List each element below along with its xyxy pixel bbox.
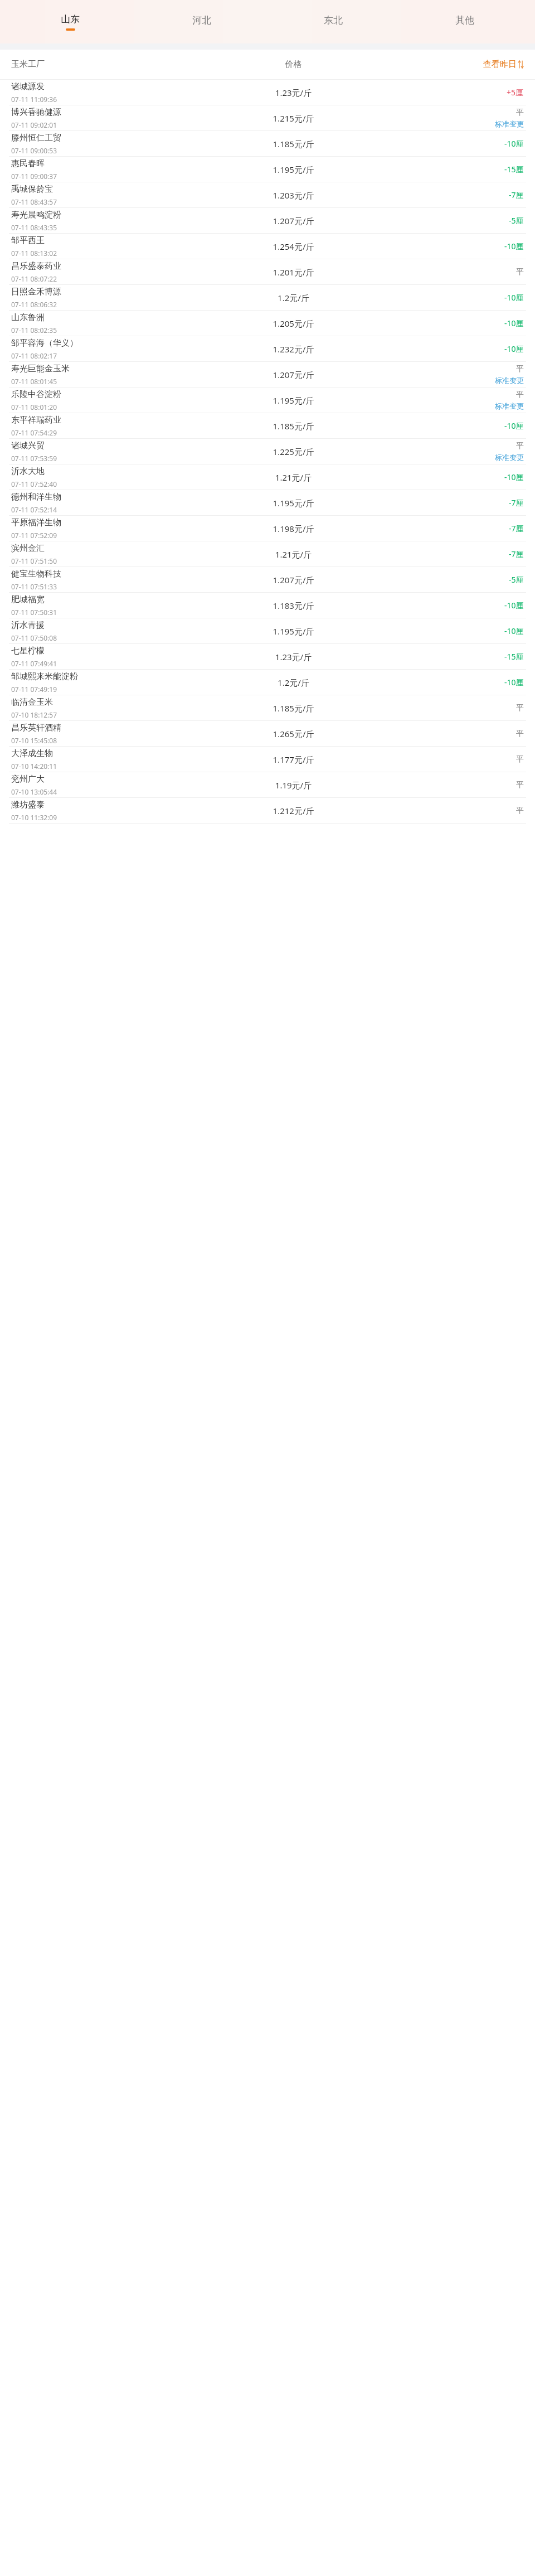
staticText: 临清金玉米	[11, 697, 53, 708]
staticText: 惠民春晖	[11, 158, 45, 169]
staticText: 07-11 07:51:50	[11, 556, 57, 565]
staticText: -10厘	[504, 677, 524, 687]
staticText: 07-11 09:02:01	[11, 120, 57, 129]
staticText: 07-10 15:45:08	[11, 736, 57, 745]
staticText: 1.2元/斤	[212, 292, 375, 303]
staticText: 1.177元/斤	[212, 754, 375, 765]
button[interactable]: 查看昨日	[375, 50, 524, 79]
staticText: -10厘	[504, 343, 524, 354]
button[interactable]: 滨州金汇	[0, 541, 535, 566]
button[interactable]: 潍坊盛泰	[0, 798, 535, 823]
staticText: 1.232元/斤	[212, 343, 375, 355]
button[interactable]: 寿光晨鸣淀粉	[0, 208, 535, 233]
staticText: 07-11 08:01:20	[11, 403, 57, 411]
button[interactable]: 兖州广大	[0, 772, 535, 797]
button[interactable]: 昌乐英轩酒精	[0, 721, 535, 746]
staticText: -15厘	[504, 164, 524, 175]
staticText: 寿光晨鸣淀粉	[11, 210, 61, 220]
button[interactable]: 乐陵中谷淀粉	[0, 388, 535, 413]
staticText: 七星柠檬	[11, 646, 45, 656]
button[interactable]: 滕州恒仁工贸	[0, 131, 535, 156]
staticText: 1.2元/斤	[212, 677, 375, 688]
staticText: 1.207元/斤	[212, 574, 375, 585]
staticText: 兖州广大	[11, 774, 45, 785]
button[interactable]: 平原福洋生物	[0, 516, 535, 541]
staticText: 1.198元/斤	[212, 523, 375, 534]
staticText: 1.201元/斤	[212, 267, 375, 278]
staticText: 07-10 18:12:57	[11, 710, 57, 719]
staticText: 邹平西王	[11, 235, 45, 246]
staticText: 1.225元/斤	[212, 446, 375, 457]
button[interactable]: 昌乐盛泰药业	[0, 259, 535, 284]
button[interactable]: 山东鲁洲	[0, 311, 535, 336]
staticText: -10厘	[504, 472, 524, 482]
button[interactable]: 惠民春晖	[0, 157, 535, 182]
staticText: 07-10 14:20:11	[11, 762, 57, 771]
button[interactable]: 邹平容海（华义）	[0, 336, 535, 361]
staticText: 1.265元/斤	[212, 728, 375, 739]
button[interactable]: 沂水大地	[0, 464, 535, 490]
staticText: 平	[516, 703, 524, 713]
button[interactable]: 沂水青援	[0, 618, 535, 643]
staticText: 山东鲁洲	[11, 312, 45, 323]
staticText: 玉米工厂	[11, 59, 212, 70]
button[interactable]: 诸城源发	[0, 80, 535, 105]
button[interactable]: 东平祥瑞药业	[0, 413, 535, 438]
staticText: 07-11 09:00:53	[11, 146, 57, 155]
button[interactable]: 禹城保龄宝	[0, 182, 535, 207]
button[interactable]: 东北	[267, 0, 399, 43]
staticText: 价格	[212, 59, 375, 70]
staticText: 滕州恒仁工贸	[11, 133, 61, 143]
staticText: 昌乐盛泰药业	[11, 261, 61, 272]
button[interactable]: 山东	[4, 0, 136, 43]
button[interactable]: 大泽成生物	[0, 747, 535, 772]
button[interactable]: 日照金禾博源	[0, 285, 535, 310]
staticText: 07-11 07:50:31	[11, 608, 57, 617]
staticText: 07-10 13:05:44	[11, 787, 57, 796]
staticText: 平	[516, 754, 524, 764]
staticText: 东平祥瑞药业	[11, 415, 61, 425]
button[interactable]: 河北	[136, 0, 267, 43]
staticText: 07-11 08:02:17	[11, 351, 57, 360]
staticText: 健宝生物科技	[11, 569, 61, 579]
staticText: 标准变更	[495, 376, 524, 385]
staticText: 平	[516, 441, 524, 451]
staticText: 1.183元/斤	[212, 600, 375, 611]
staticText: 07-10 11:32:09	[11, 813, 57, 822]
staticText: 1.23元/斤	[212, 651, 375, 662]
button[interactable]: 临清金玉米	[0, 695, 535, 720]
button[interactable]: 德州和洋生物	[0, 490, 535, 515]
staticText: 1.203元/斤	[212, 190, 375, 201]
button[interactable]: 寿光巨能金玉米	[0, 362, 535, 387]
staticText: -10厘	[504, 241, 524, 251]
staticText: 1.185元/斤	[212, 138, 375, 149]
button[interactable]: 肥城福宽	[0, 593, 535, 618]
staticText: 07-11 09:00:37	[11, 172, 57, 181]
staticText: 07-11 11:09:36	[11, 95, 57, 104]
staticText: 其他	[455, 14, 474, 26]
staticText: 1.207元/斤	[212, 215, 375, 226]
staticText: 邹平容海（华义）	[11, 338, 78, 348]
staticText: 07-11 08:13:02	[11, 249, 57, 258]
staticText: -10厘	[504, 420, 524, 431]
button[interactable]: 博兴香驰健源	[0, 105, 535, 130]
staticText: +5厘	[507, 87, 524, 98]
staticText: 昌乐英轩酒精	[11, 723, 61, 733]
button[interactable]: 其他	[399, 0, 531, 43]
staticText: 1.185元/斤	[212, 420, 375, 432]
staticText: -10厘	[504, 600, 524, 611]
staticText: 平	[516, 390, 524, 400]
staticText: 平	[516, 729, 524, 739]
staticText: 邹城熙来米能淀粉	[11, 671, 78, 682]
staticText: 07-11 08:01:45	[11, 377, 57, 386]
button[interactable]: 邹平西王	[0, 234, 535, 259]
button[interactable]: 邹城熙来米能淀粉	[0, 670, 535, 695]
button[interactable]: 诸城兴贸	[0, 439, 535, 464]
button[interactable]: 健宝生物科技	[0, 567, 535, 592]
button[interactable]: 七星柠檬	[0, 644, 535, 669]
staticText: -5厘	[509, 574, 524, 585]
staticText: 1.21元/斤	[212, 472, 375, 483]
staticText: -10厘	[504, 292, 524, 303]
staticText: -7厘	[509, 549, 524, 559]
other: Sort	[518, 61, 524, 68]
